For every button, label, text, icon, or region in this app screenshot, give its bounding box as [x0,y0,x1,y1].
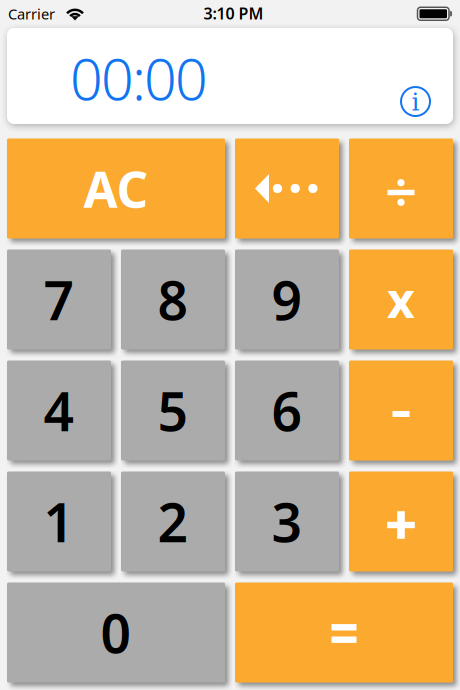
staticText: 2 [157,486,188,557]
staticText: 8 [157,264,188,335]
staticText: AC [83,156,148,221]
button[interactable]: 4 [7,360,111,460]
button[interactable]: 3 [235,471,339,571]
staticText: Carrier [8,4,55,23]
button[interactable]: Info [399,85,432,118]
button[interactable]: Divide [349,138,453,238]
staticText: 7 [43,264,74,335]
staticText: i [411,88,419,116]
button[interactable]: AC [7,138,225,238]
button[interactable]: Plus [349,471,453,571]
staticText: 5 [157,375,188,446]
staticText: 0 [100,597,131,668]
button[interactable]: x [349,249,453,349]
button[interactable]: 2 [121,471,225,571]
staticText: 4 [43,375,74,446]
button[interactable]: Backspace [235,138,339,238]
staticText: 1 [43,486,74,557]
button[interactable]: 8 [121,249,225,349]
staticText: 9 [271,264,302,335]
button[interactable]: 0 [7,582,225,682]
button[interactable]: Minus [349,360,453,460]
staticText: 00:00 [70,40,208,116]
button[interactable]: 7 [7,249,111,349]
staticText: 3 [271,486,302,557]
button[interactable]: 5 [121,360,225,460]
button[interactable]: 1 [7,471,111,571]
staticText: x [387,268,415,331]
button[interactable]: 6 [235,360,339,460]
staticText: 6 [271,375,302,446]
button[interactable]: 9 [235,249,339,349]
staticText: 3:10 PM [203,3,263,24]
button[interactable]: Equals [235,582,453,682]
